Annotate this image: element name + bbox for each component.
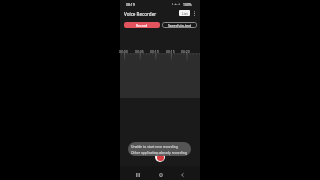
staticText: Record [136,23,148,28]
staticText: 00:05 [135,49,144,54]
button[interactable]: Recent apps [133,170,142,179]
staticText: Other application already recording [131,150,187,155]
staticText: 00:15 [166,49,175,54]
staticText: 00:10 [150,49,159,54]
staticText: 00:20 [181,49,190,54]
button[interactable]: More options [190,9,199,18]
staticText: 08:19 [126,2,135,7]
staticText: Voice Recorder [124,11,157,17]
staticText: Speech-to-text [168,23,192,28]
button[interactable]: Record [155,152,165,162]
button[interactable]: Home [156,170,165,179]
button[interactable]: List [179,10,190,16]
staticText: List [182,11,188,16]
button[interactable]: Record [124,22,160,28]
staticText: 100% [183,2,192,7]
staticText: 00:00 [119,49,128,54]
button[interactable]: Speech-to-text [162,22,197,28]
staticText: Unable to start new recording [131,144,178,149]
button[interactable]: Back [178,170,187,179]
